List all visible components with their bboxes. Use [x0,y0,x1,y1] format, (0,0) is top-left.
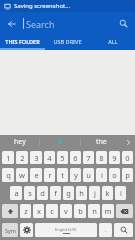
staticText: I [59,137,62,147]
staticText: 3 [34,153,39,163]
staticText: k [105,188,110,198]
button[interactable]: 3 [30,151,42,164]
button[interactable]: m [102,204,114,218]
staticText: 6 [73,153,78,163]
button[interactable]: USB DRIVE [45,35,90,48]
button[interactable]: Back [0,12,23,35]
staticText: 0 [125,153,130,163]
staticText: l [120,188,122,198]
staticText: Search [26,18,55,30]
button[interactable]: i [96,168,107,182]
button[interactable]: 0 [122,151,133,164]
staticText: t [61,170,64,180]
staticText: c [50,206,54,216]
staticText: 9 [112,153,117,163]
staticText: a [14,188,19,198]
button[interactable]: v [60,204,72,218]
staticText: the [96,137,107,147]
staticText: s [28,188,32,198]
button[interactable]: w [16,168,28,182]
staticText: u [86,170,91,180]
button[interactable]: THIS FOLDER [0,35,45,48]
button[interactable]: b [74,204,86,218]
button[interactable]: 5 [57,151,68,164]
button[interactable]: n [88,204,100,218]
button[interactable]: l [115,186,126,200]
button[interactable]: f [50,186,61,200]
button[interactable]: s [24,186,35,200]
staticText: y [74,170,78,180]
button[interactable]: y [70,168,81,182]
button[interactable]: ALL [90,35,135,48]
button[interactable]: a [10,186,22,200]
staticText: ALL [108,38,118,45]
staticText: m [104,206,112,216]
staticText: z [24,206,28,216]
staticText: v [64,206,68,216]
button[interactable]: Period [99,223,112,237]
staticText: THIS FOLDER [5,38,40,45]
button[interactable]: x [33,204,44,218]
button[interactable]: p [122,168,133,182]
button[interactable]: Search [23,12,112,35]
staticText: r [48,170,52,180]
staticText: p [125,170,130,180]
button[interactable]: o [109,168,120,182]
staticText: n [92,206,97,216]
button[interactable]: the [81,135,121,149]
button[interactable]: h [76,186,87,200]
button[interactable]: 7 [83,151,94,164]
staticText: w [19,170,25,180]
staticText: hey [14,137,26,147]
button[interactable]: 2 [16,151,28,164]
button[interactable]: e [30,168,42,182]
button[interactable]: k [102,186,113,200]
button[interactable]: Space [35,223,97,237]
staticText: q [6,170,11,180]
button[interactable]: More suggestions [121,135,135,149]
staticText: f [54,188,57,198]
staticText: Saving screenshot... [14,2,71,10]
staticText: USB DRIVE [53,38,82,45]
staticText: 2 [20,153,25,163]
button[interactable]: t [57,168,68,182]
button[interactable]: d [37,186,48,200]
button[interactable]: z [20,204,31,218]
button[interactable]: I [40,135,80,149]
button[interactable]: c [46,204,58,218]
button[interactable]: hey [0,135,39,149]
staticText: e [34,170,39,180]
staticText: Sym [5,227,16,234]
button[interactable]: Search [112,12,135,35]
button[interactable]: j [89,186,100,200]
button[interactable]: q [2,168,14,182]
staticText: 7 [86,153,91,163]
button[interactable]: 8 [96,151,107,164]
button[interactable]: Search [114,223,133,237]
staticText: . [105,226,107,234]
button[interactable]: Shift [2,204,18,218]
button[interactable]: Keyboard settings [20,223,33,237]
button[interactable]: u [83,168,94,182]
staticText: b [78,206,83,216]
button[interactable]: 4 [44,151,55,164]
button[interactable]: 6 [70,151,81,164]
staticText: d [40,188,45,198]
button[interactable]: 1 [2,151,14,164]
staticText: h [79,188,84,198]
staticText: g [66,188,71,198]
staticText: 1 [6,153,11,163]
staticText: i [101,170,103,180]
button[interactable]: Backspace [116,204,133,218]
button[interactable]: 9 [109,151,120,164]
staticText: English(US) [55,227,77,232]
staticText: x [37,206,41,216]
staticText: 4 [47,153,52,163]
button[interactable]: Sym [2,223,18,237]
staticText: 5 [60,153,65,163]
staticText: j [94,188,96,198]
button[interactable]: g [63,186,74,200]
button[interactable]: r [44,168,55,182]
staticText: o [112,170,117,180]
staticText: 8 [99,153,104,163]
